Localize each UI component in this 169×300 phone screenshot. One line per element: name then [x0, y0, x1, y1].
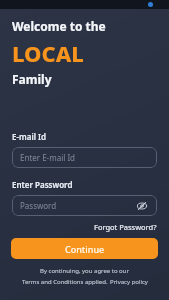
button[interactable]: Show password — [135, 199, 149, 213]
staticText: Family — [12, 71, 52, 87]
button[interactable]: Privacy policy — [110, 278, 148, 286]
staticText: Enter Password — [12, 179, 73, 190]
staticText: Password — [20, 200, 57, 211]
staticText: Continue — [65, 243, 105, 255]
button[interactable]: Continue — [11, 238, 158, 259]
staticText: Forgot Password? — [94, 222, 157, 232]
staticText: Enter E-mail Id — [20, 152, 76, 163]
button[interactable]: Enter E-mail Id — [12, 147, 157, 168]
button[interactable]: Forgot Password? — [94, 222, 157, 232]
staticText: LOCAL — [12, 38, 84, 68]
staticText: E-mail Id — [12, 131, 46, 142]
staticText: By continuing, you agree to our — [40, 267, 129, 275]
staticText: Welcome to the — [12, 18, 106, 34]
button[interactable]: Password — [12, 195, 157, 216]
button[interactable]: Terms and Conditions applied. — [22, 278, 108, 286]
